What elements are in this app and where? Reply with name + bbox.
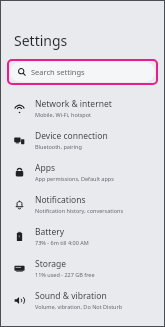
button[interactable]: Network & internet bbox=[1, 92, 164, 124]
button[interactable]: Battery bbox=[1, 220, 164, 252]
staticText: Apps bbox=[35, 162, 55, 174]
staticText: Device connection bbox=[35, 130, 108, 142]
staticText: Bluetooth, pairing bbox=[35, 143, 82, 150]
staticText: Volume, vibration, Do Not Disturb bbox=[35, 303, 123, 310]
staticText: Storage bbox=[35, 258, 67, 270]
staticText: Sound & vibration bbox=[35, 290, 107, 302]
staticText: Network & internet bbox=[35, 98, 112, 110]
button[interactable]: Sound & vibration bbox=[1, 284, 164, 316]
button[interactable]: Storage bbox=[1, 252, 164, 284]
button[interactable]: Notifications bbox=[1, 188, 164, 220]
staticText: Settings bbox=[14, 31, 68, 50]
staticText: Notifications bbox=[35, 194, 86, 206]
staticText: 11% used - 227 GB free bbox=[35, 271, 95, 278]
button[interactable]: Search settings bbox=[10, 62, 155, 82]
staticText: 73% - 6m till 4:00 AM bbox=[35, 239, 89, 246]
staticText: App permissions, Default apps bbox=[35, 175, 114, 182]
staticText: Battery bbox=[35, 226, 65, 238]
button[interactable]: Device connection bbox=[1, 124, 164, 156]
staticText: Search settings bbox=[31, 67, 85, 77]
button[interactable]: Apps bbox=[1, 156, 164, 188]
staticText: Mobile, Wi-Fi, hotspot bbox=[35, 111, 92, 118]
staticText: Notification history, conversations bbox=[35, 207, 124, 214]
